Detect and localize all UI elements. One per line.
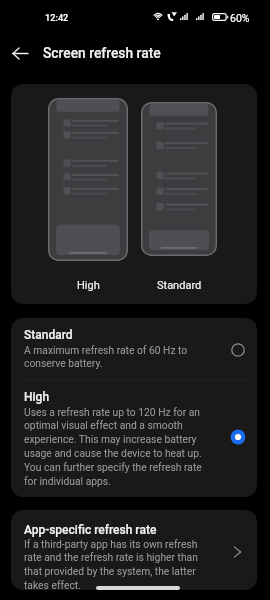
button[interactable]: Standard [11, 328, 257, 380]
button[interactable] [141, 102, 217, 256]
button[interactable]: App-specific refresh rate [11, 510, 257, 590]
staticText: Standard [24, 328, 73, 342]
staticText: High [24, 390, 50, 404]
button[interactable]: High [11, 390, 257, 486]
staticText: High [77, 279, 100, 292]
button[interactable] [48, 98, 128, 261]
button[interactable]: Back [0, 33, 40, 73]
staticText: Standard [157, 279, 202, 292]
staticText: Uses a refresh rate up to 120 Hz for an … [24, 406, 205, 488]
staticText: A maximum refresh rate of 60 Hz to conse… [24, 344, 205, 370]
staticText: 12:42 [45, 12, 69, 23]
staticText: 60% [230, 12, 250, 24]
staticText: App-specific refresh rate [24, 523, 157, 537]
staticText: Screen refresh rate [43, 45, 161, 61]
staticText: If a third-party app has its own refresh… [24, 538, 205, 590]
